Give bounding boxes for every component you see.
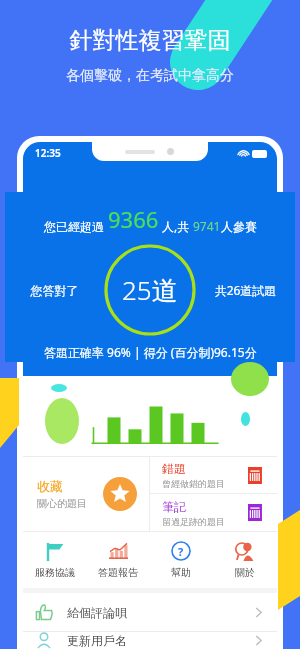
staticText: 曾經做錯的題目 — [162, 478, 225, 489]
staticText: 收藏 — [37, 478, 63, 494]
staticText: 12:35 — [35, 146, 61, 160]
staticText: 更新用戶名 — [67, 633, 254, 648]
button[interactable]: 答題報告 — [86, 532, 149, 588]
staticText: 您已經超過 — [44, 218, 108, 234]
staticText: 9366 — [108, 204, 159, 234]
staticText: 答題正確率 96% | 得分 (百分制)96.15分 — [44, 344, 257, 360]
staticText: 關心的題目 — [37, 497, 87, 510]
other: 關於 — [235, 541, 255, 561]
button[interactable]: 收藏 — [23, 457, 149, 531]
staticText: 關於 — [235, 566, 255, 579]
other: 服務協議 — [45, 541, 65, 561]
staticText: 留過足跡的題目 — [162, 516, 225, 527]
button[interactable]: 筆記 — [150, 494, 277, 531]
staticText: 人參賽 — [221, 219, 257, 234]
staticText: 各個擊破，在考試中拿高分 — [0, 67, 300, 85]
other: 答題報告 — [108, 541, 128, 561]
staticText: ? — [178, 544, 184, 559]
button[interactable]: 更新用戶名 — [23, 632, 277, 649]
staticText: 答題報告 — [98, 566, 138, 579]
staticText: 您答對了 — [5, 283, 104, 298]
staticText: 幫助 — [171, 566, 191, 579]
staticText: 筆記 — [162, 499, 186, 514]
staticText: 服務協議 — [35, 566, 75, 579]
staticText: 9741 — [193, 218, 221, 234]
button[interactable]: 幫助 — [149, 532, 213, 588]
other: 幫助 — [171, 541, 191, 561]
staticText: 針對性複習鞏固 — [0, 26, 300, 55]
button[interactable]: 服務協議 — [23, 532, 86, 588]
staticText: 25道 — [122, 272, 178, 308]
staticText: 錯題 — [162, 461, 186, 476]
button[interactable]: 錯題 — [150, 457, 277, 493]
staticText: 給個評論唄 — [67, 605, 254, 620]
button[interactable]: 關於 — [213, 532, 277, 588]
staticText: 人,共 — [159, 218, 193, 234]
button[interactable]: 給個評論唄 — [23, 593, 277, 631]
staticText: 共26道試題 — [196, 282, 295, 298]
